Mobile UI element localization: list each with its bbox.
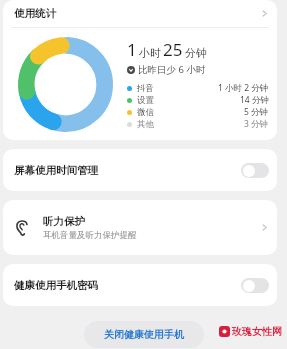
staticText: 玫瑰女性网 <box>232 325 282 338</box>
staticText: 1 <box>127 38 137 61</box>
staticText: 比昨日少 6 小时 <box>138 63 206 76</box>
button[interactable]: Toggle switch, off <box>241 163 269 178</box>
button[interactable]: 健康使用手机密码 <box>3 264 277 306</box>
staticText: 抖音 <box>137 83 154 94</box>
staticText: 屏幕使用时间管理 <box>14 164 98 177</box>
button[interactable]: Toggle switch, off <box>241 278 269 293</box>
staticText: 健康使用手机密码 <box>14 279 98 292</box>
button[interactable]: 屏幕使用时间管理 <box>3 149 277 191</box>
button[interactable]: 使用统计 <box>3 0 277 27</box>
staticText: 听力保护 <box>43 215 85 228</box>
staticText: 14 分钟 <box>240 94 269 106</box>
other: Hearing protection <box>14 219 31 236</box>
staticText: 25 <box>163 38 183 61</box>
staticText: 设置 <box>137 95 154 106</box>
staticText: 使用统计 <box>14 7 56 20</box>
staticText: 小时 <box>139 46 161 60</box>
staticText: 分钟 <box>185 46 207 60</box>
staticText: 1 小时 2 分钟 <box>218 82 269 94</box>
staticText: 耳机音量及听力保护提醒 <box>43 230 137 241</box>
staticText: 微信 <box>137 107 154 118</box>
button[interactable]: 关闭健康使用手机 <box>84 321 204 348</box>
staticText: 其他 <box>137 119 154 130</box>
staticText: 3 分钟 <box>244 118 269 130</box>
button[interactable]: Hearing protection <box>3 200 277 255</box>
staticText: 5 分钟 <box>244 106 269 118</box>
staticText: 关闭健康使用手机 <box>104 328 184 341</box>
